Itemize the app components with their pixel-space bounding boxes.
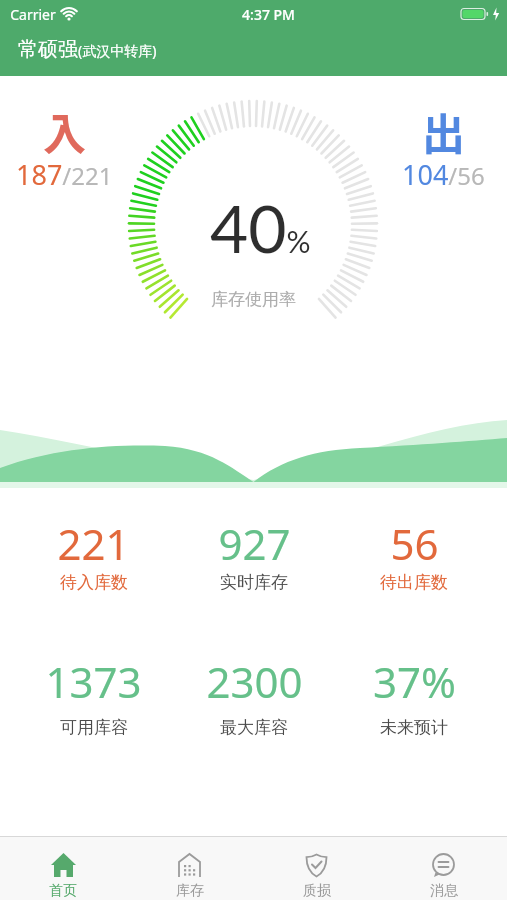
staticText: 187/221 [16,156,113,193]
staticText: 40% [210,188,311,267]
staticText: 消息 [430,882,458,900]
button[interactable]: 消息 [380,837,507,900]
staticText: 质损 [303,882,331,900]
staticText: Carrier [10,5,56,24]
staticText: 出 [422,100,465,162]
staticText: 待入库数 [60,572,128,593]
staticText: 库存使用率 [211,289,296,310]
staticText: 首页 [49,882,77,900]
staticText: 可用库容 [60,717,128,738]
staticText: 最大库容 [220,717,288,738]
button[interactable]: 首页 [0,837,126,900]
staticText: 待出库数 [380,572,448,593]
button[interactable]: 质损 [253,837,380,900]
staticText: 未来预计 [380,717,448,738]
staticText: 常硕强(武汉中转库) [18,37,157,62]
button[interactable]: 库存 [126,837,253,900]
staticText: 104/56 [402,156,485,193]
staticText: 1373 [45,653,142,710]
staticText: 56 [390,515,439,572]
staticText: 4:37 PM [242,5,295,24]
staticText: 221 [57,515,130,572]
staticText: 入 [43,100,86,162]
staticText: 实时库存 [220,572,288,593]
staticText: 927 [218,515,291,572]
staticText: 2300 [206,653,303,710]
staticText: 37% [373,653,456,710]
staticText: 库存 [176,882,204,900]
